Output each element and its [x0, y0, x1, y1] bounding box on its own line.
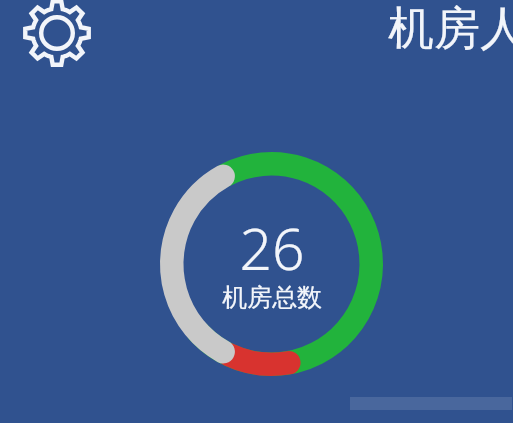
- button[interactable]: Settings: [14, 0, 100, 74]
- staticText: 26: [239, 209, 305, 287]
- staticText: 机房总数: [222, 282, 322, 313]
- button[interactable]: 26: [155, 147, 388, 381]
- staticText: 机房人: [388, 0, 513, 58]
